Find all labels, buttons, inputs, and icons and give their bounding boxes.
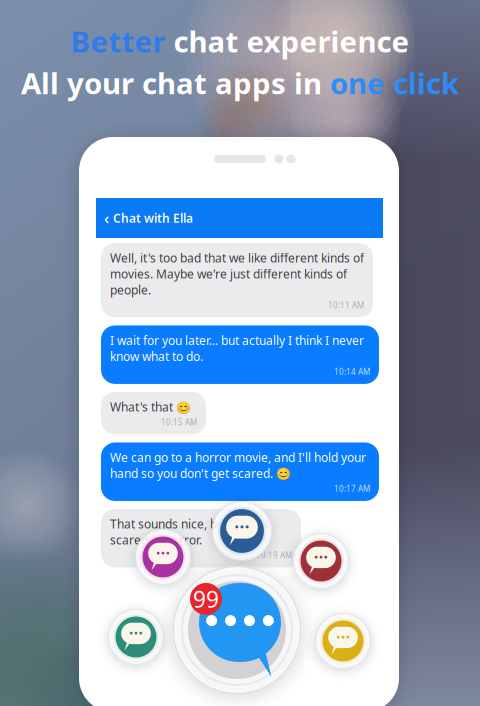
staticText: All your chat apps in [21, 63, 330, 102]
staticText: That sounds nice, but I'm not scared of … [110, 516, 269, 548]
staticText: one click [330, 63, 459, 102]
staticText: 10:17 AM [334, 483, 370, 494]
staticText: ‹ [104, 207, 109, 229]
staticText: 10:11 AM [328, 300, 364, 310]
staticText: 10:14 AM [334, 366, 370, 377]
staticText: chat experience [165, 21, 409, 60]
staticText: 10:15 AM [161, 417, 197, 427]
staticText: What's that 😊 [110, 399, 191, 415]
staticText: Well, it's too bad that we like differen… [110, 250, 364, 298]
staticText: Better [70, 21, 165, 60]
staticText: Chat with Ella [113, 210, 193, 226]
staticText: I wait for you later... but actually I t… [110, 332, 364, 364]
button[interactable]: ‹ [96, 198, 383, 238]
staticText: 99 [193, 584, 219, 614]
staticText: We can go to a horror movie, and I'll ho… [110, 449, 366, 481]
staticText: 10:19 AM [256, 550, 292, 560]
